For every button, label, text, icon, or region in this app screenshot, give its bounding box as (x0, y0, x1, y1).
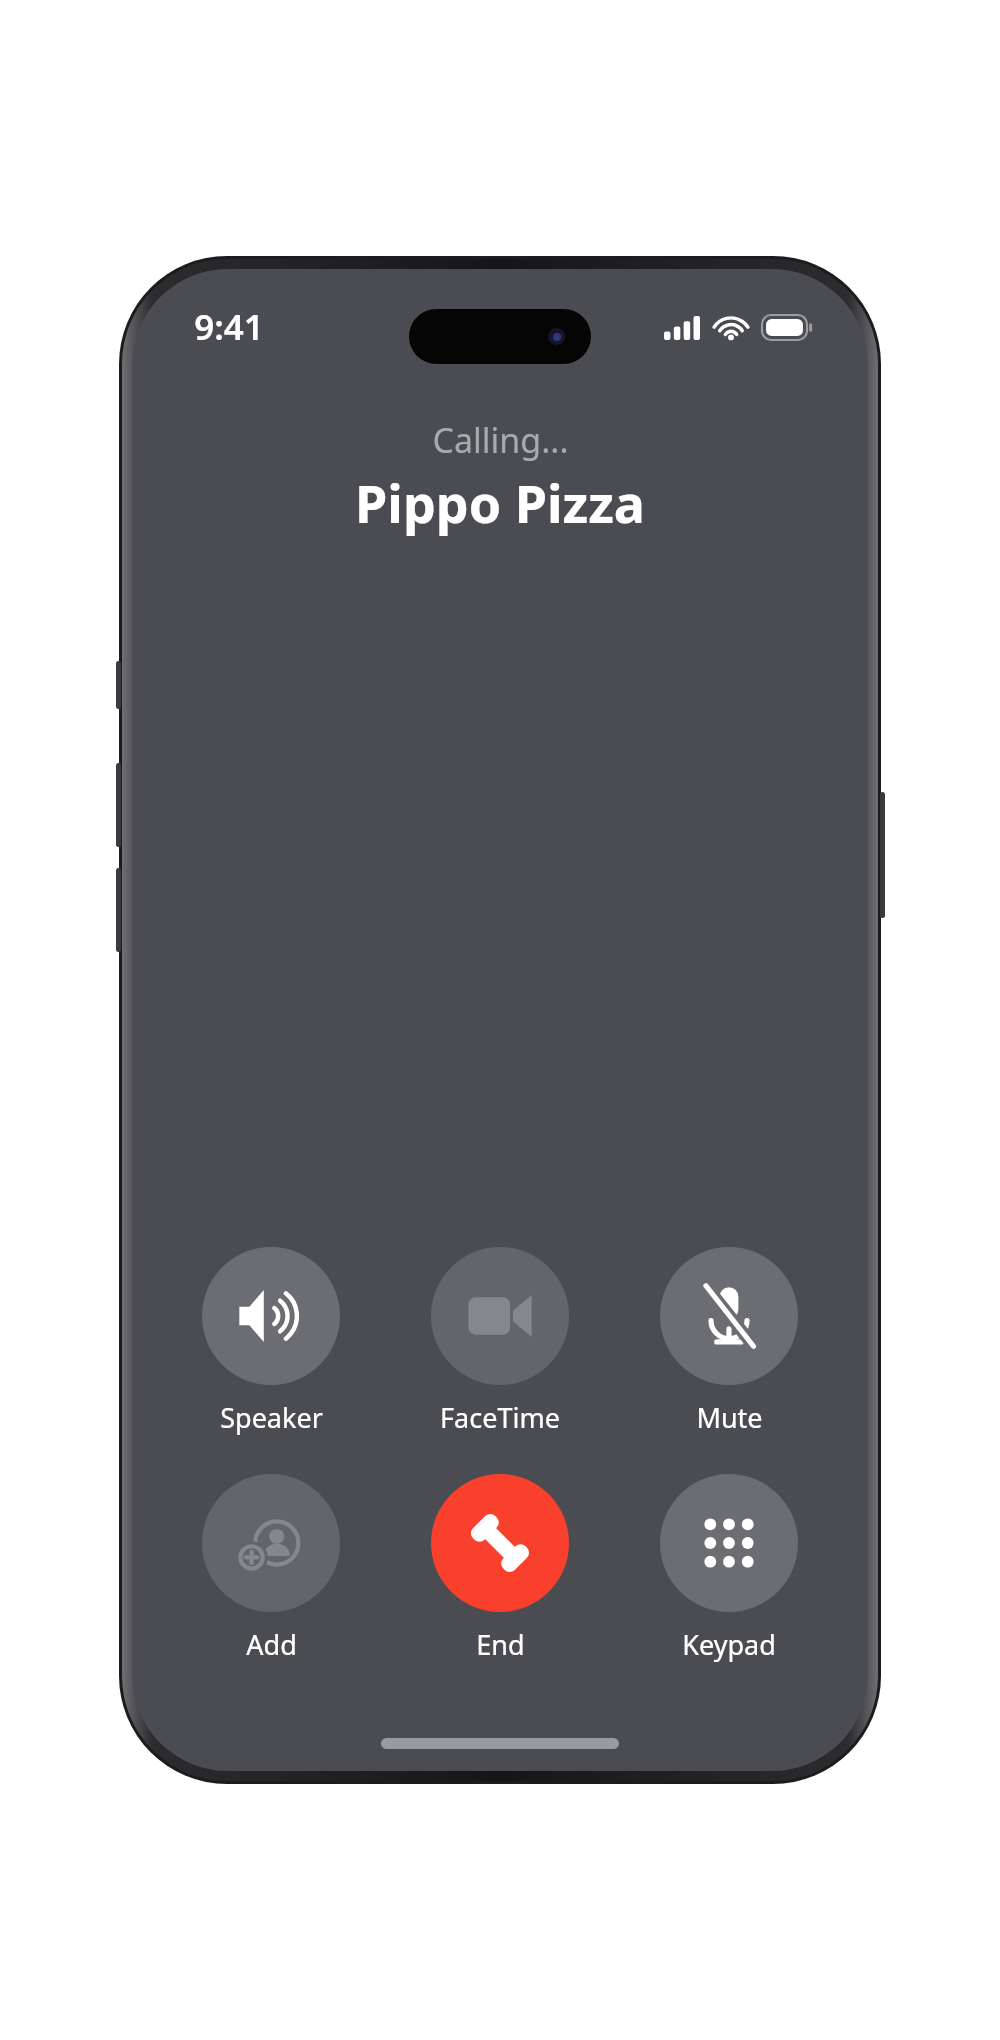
staticText: Mute (696, 1399, 763, 1436)
button[interactable]: Add (181, 1474, 361, 1663)
button[interactable]: Keypad (639, 1474, 819, 1663)
button[interactable]: End (410, 1474, 590, 1663)
staticText: FaceTime (440, 1399, 560, 1436)
staticText: End (476, 1626, 525, 1663)
button[interactable]: FaceTime (410, 1247, 590, 1436)
staticText: Pippo Pizza (355, 467, 645, 538)
button[interactable]: Mute (639, 1247, 819, 1436)
button[interactable]: Speaker (181, 1247, 361, 1436)
staticText: Speaker (220, 1399, 323, 1436)
staticText: Calling... (432, 417, 569, 463)
staticText: 9:41 (194, 303, 264, 351)
staticText: Keypad (682, 1626, 776, 1663)
staticText: Add (246, 1626, 297, 1663)
